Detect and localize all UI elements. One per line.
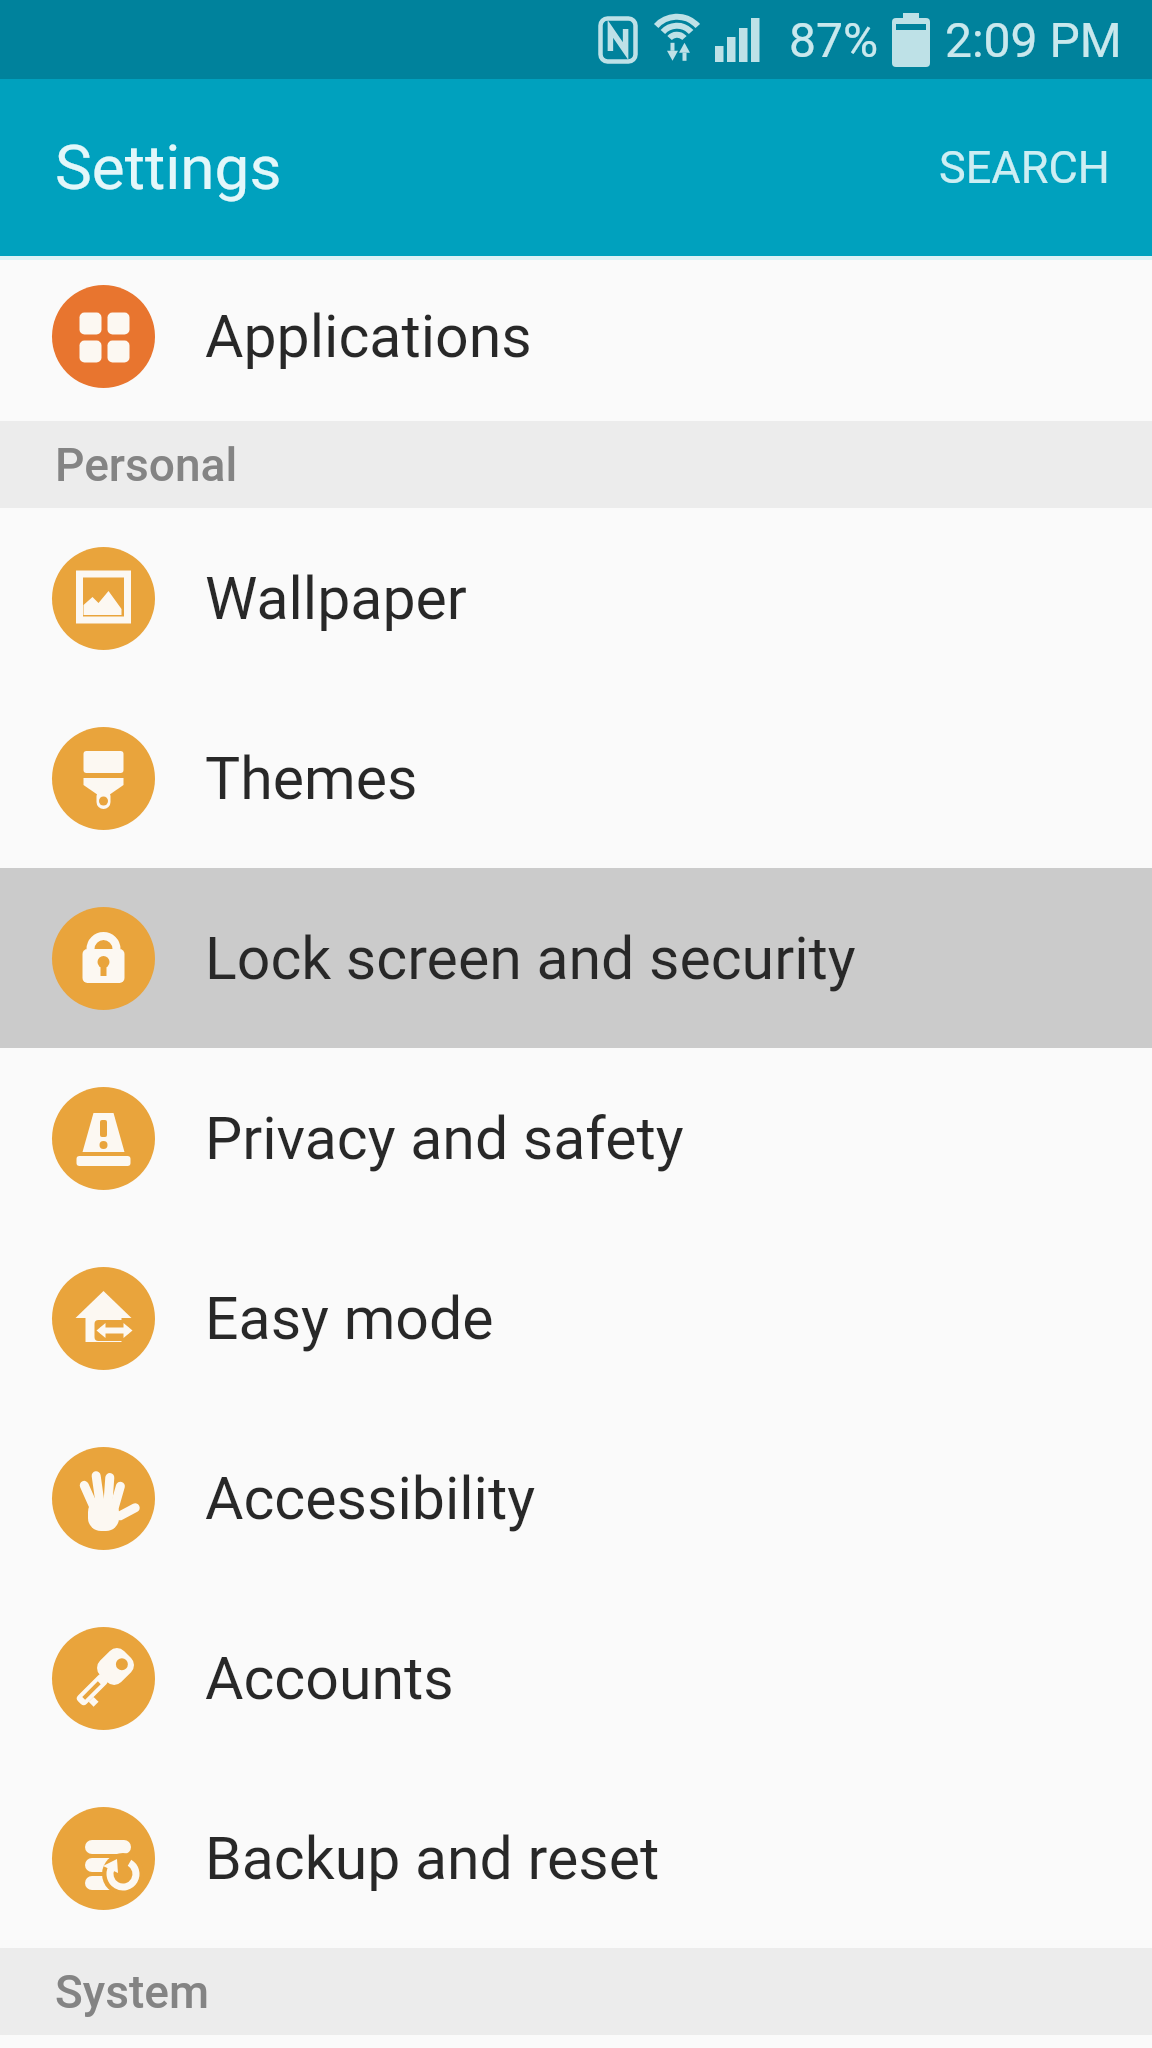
staticText: Applications (205, 302, 532, 371)
button[interactable]: Privacy and safety (0, 1048, 1152, 1228)
staticText: Wallpaper (205, 564, 467, 633)
staticText: 2:09 PM (945, 12, 1122, 68)
staticText: Accounts (205, 1644, 454, 1713)
button[interactable]: Applications (0, 260, 1152, 412)
button[interactable]: Wallpaper (0, 508, 1152, 688)
staticText: Settings (55, 131, 282, 204)
staticText: Easy mode (205, 1284, 494, 1353)
button[interactable]: Easy mode (0, 1228, 1152, 1408)
staticText: Privacy and safety (205, 1104, 684, 1173)
staticText: Themes (205, 744, 418, 813)
staticText: Lock screen and security (205, 924, 856, 993)
button[interactable]: SEARCH (939, 141, 1110, 194)
staticText: Accessibility (205, 1464, 536, 1533)
staticText: Personal (55, 438, 238, 492)
button[interactable]: Lock screen and security (0, 868, 1152, 1048)
button[interactable]: Backup and reset (0, 1768, 1152, 1948)
staticText: 87% (789, 12, 879, 68)
staticText: System (55, 1965, 209, 2019)
button[interactable]: Themes (0, 688, 1152, 868)
button[interactable]: Accessibility (0, 1408, 1152, 1588)
staticText: SEARCH (939, 141, 1110, 194)
button[interactable]: Accounts (0, 1588, 1152, 1768)
staticText: Backup and reset (205, 1824, 660, 1893)
